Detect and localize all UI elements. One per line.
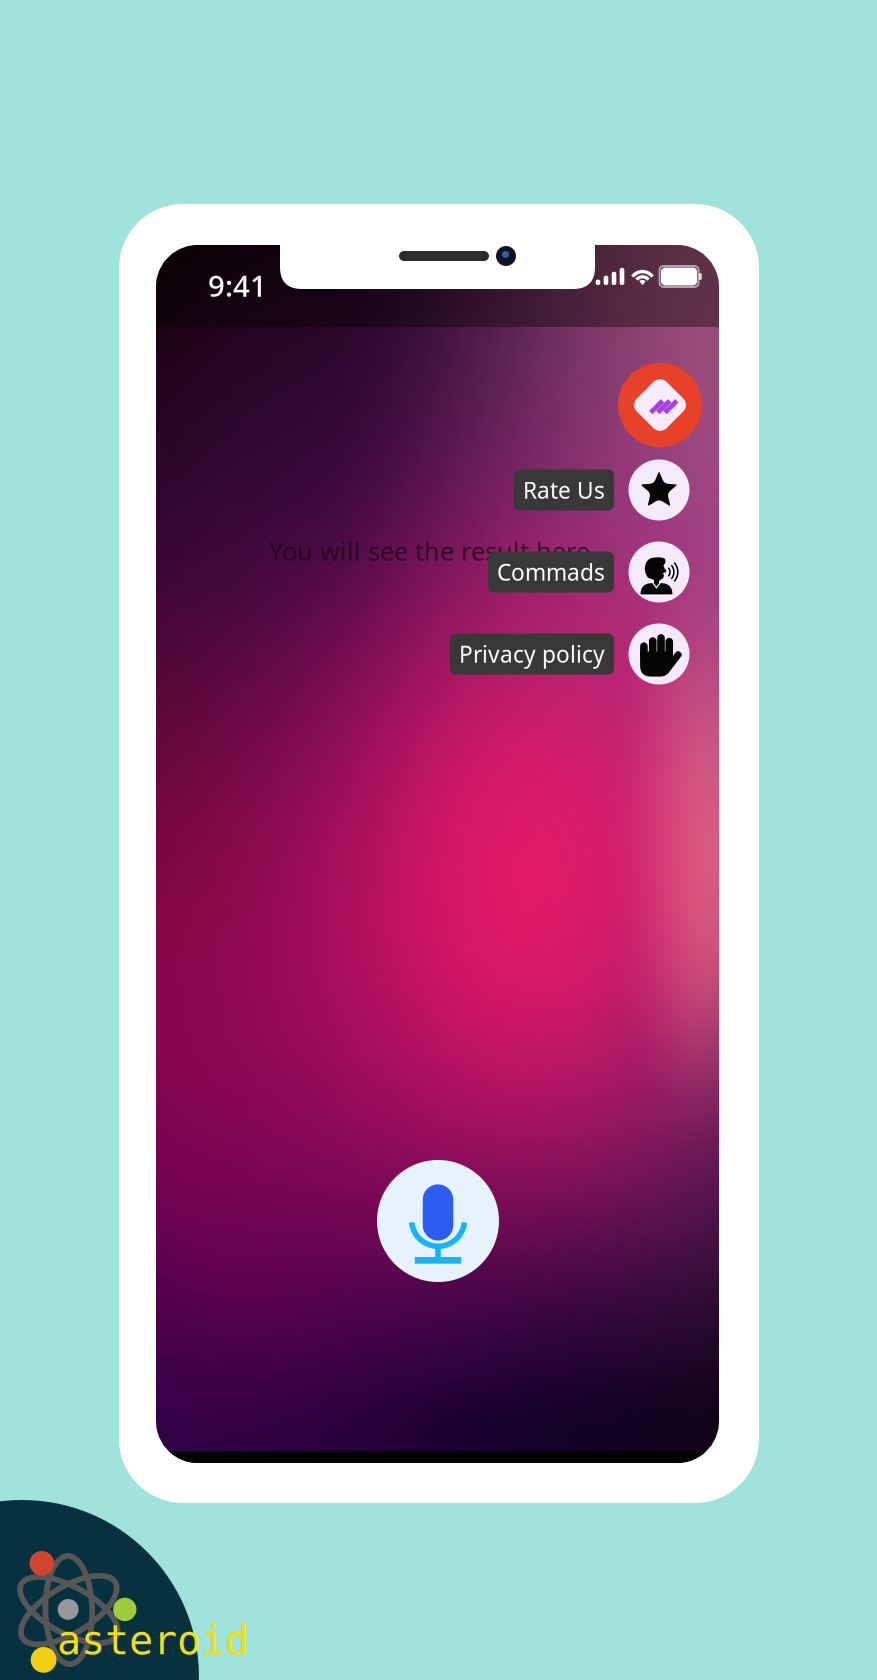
staticText: asteroid	[57, 1617, 249, 1664]
button[interactable]: Commads	[488, 551, 614, 592]
staticText: Rate Us	[523, 475, 605, 505]
staticText: Privacy policy	[459, 639, 605, 669]
button[interactable]: Privacy policy	[450, 633, 614, 674]
button[interactable]: Assistant menu	[618, 363, 702, 447]
staticText: 9:41	[208, 266, 267, 305]
staticText: You will see the result here	[269, 534, 590, 568]
button[interactable]: Start voice input	[377, 1160, 499, 1282]
button[interactable]: Rate Us	[514, 469, 614, 510]
button[interactable]: Rate Us	[628, 459, 689, 520]
button[interactable]: Commads	[628, 541, 689, 602]
staticText: Commads	[497, 557, 605, 587]
button[interactable]: Privacy policy	[628, 623, 689, 684]
